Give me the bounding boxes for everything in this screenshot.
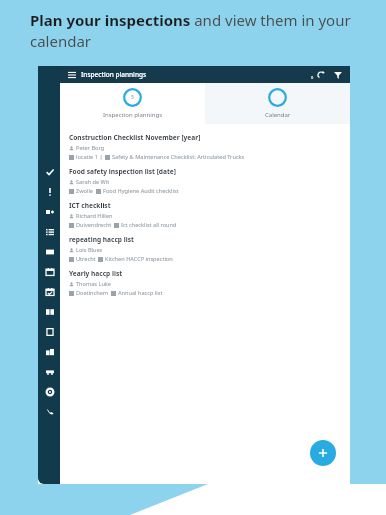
button[interactable]: Sidebar item 4 xyxy=(44,226,55,237)
button[interactable]: Filter xyxy=(331,68,344,81)
staticText: Duivendrecht xyxy=(76,221,112,229)
button[interactable]: Sidebar item 11 xyxy=(44,366,55,377)
button[interactable]: Sidebar item 12 xyxy=(44,386,55,397)
button[interactable]: Sidebar item 9 xyxy=(44,326,55,337)
staticText: Food Hygiene Audit checklist xyxy=(103,187,179,195)
button[interactable]: Sidebar item 13 xyxy=(44,406,55,417)
button[interactable]: Sidebar item 1 xyxy=(44,166,55,177)
staticText: repeating haccp list xyxy=(69,235,134,244)
staticText: Food safety inspection list [date] xyxy=(69,167,176,176)
staticText: Plan your inspections and view them in y… xyxy=(30,10,372,52)
button[interactable]: Sidebar item 6 xyxy=(44,266,55,277)
staticText: Ict checklist all round xyxy=(121,221,177,229)
staticText: Kitchen HACCP inspection xyxy=(105,255,173,263)
button[interactable]: Food safety inspection list [date] xyxy=(69,164,341,198)
staticText: locatie 1 | xyxy=(76,153,103,161)
button[interactable]: Sidebar item 7 xyxy=(44,286,55,297)
button[interactable]: Refresh xyxy=(314,68,327,81)
staticText: 0 xyxy=(311,75,314,80)
button[interactable]: repeating haccp list xyxy=(69,232,341,266)
button[interactable]: Sidebar item 5 xyxy=(44,246,55,257)
staticText: Thomas Luke xyxy=(76,280,111,288)
button[interactable]: Sidebar item 10 xyxy=(44,346,55,357)
staticText: Richard Hillen xyxy=(76,212,113,220)
staticText: Yearly haccp list xyxy=(69,269,123,278)
button[interactable]: Sidebar item 2 xyxy=(44,186,55,197)
button[interactable]: ICT checklist xyxy=(69,198,341,232)
button[interactable]: 5 xyxy=(60,83,205,124)
staticText: Peter Borg xyxy=(76,144,105,152)
staticText: Doetinchem xyxy=(76,289,109,297)
staticText: ICT checklist xyxy=(69,201,111,210)
button[interactable]: Add inspection xyxy=(310,440,336,466)
staticText: Sarah de Wit xyxy=(76,178,110,186)
button[interactable]: Sidebar item 3 xyxy=(44,206,55,217)
staticText: Inspection plannings xyxy=(103,111,163,119)
button[interactable]: Yearly haccp list xyxy=(69,266,341,300)
staticText: Safety & Maintenance Checklist: Articula… xyxy=(112,153,245,161)
staticText: Construction Checklist November [year] xyxy=(69,133,201,142)
staticText: Zwolle xyxy=(76,187,94,195)
button[interactable]: Sidebar item 8 xyxy=(44,306,55,317)
button[interactable]: Open navigation menu xyxy=(66,69,77,80)
staticText: Utrecht xyxy=(76,255,96,263)
staticText: Annual haccp list xyxy=(118,289,163,297)
staticText: Calendar xyxy=(265,111,291,119)
staticText: 5 xyxy=(131,94,134,101)
button[interactable]: Calendar xyxy=(205,83,350,124)
staticText: Lois Blues xyxy=(76,246,103,254)
button[interactable]: Construction Checklist November [year] xyxy=(69,130,341,164)
staticText: Inspection plannings xyxy=(81,70,147,79)
